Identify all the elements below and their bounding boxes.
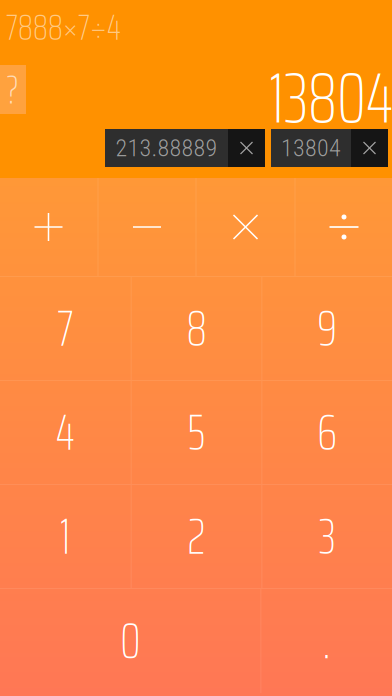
staticText: 0: [120, 602, 140, 680]
button[interactable]: Remove 13804: [351, 129, 388, 167]
staticText: 8: [186, 290, 206, 367]
staticText: 13804: [269, 42, 392, 154]
staticText: 9: [317, 290, 337, 367]
button[interactable]: Help: [0, 65, 26, 114]
button[interactable]: 213.88889: [105, 129, 228, 167]
staticText: 7888×7÷4: [6, 0, 121, 56]
button[interactable]: 3: [262, 485, 392, 588]
button[interactable]: 13804: [271, 129, 351, 167]
staticText: 3: [319, 498, 336, 575]
staticText: ?: [7, 58, 19, 121]
button[interactable]: Divide: [295, 178, 392, 276]
button[interactable]: 7: [0, 277, 131, 380]
button[interactable]: 1: [0, 485, 131, 588]
staticText: 2: [187, 498, 205, 575]
staticText: 5: [187, 394, 205, 471]
button[interactable]: 0: [0, 589, 260, 692]
button[interactable]: 2: [132, 485, 261, 588]
button[interactable]: Multiply: [196, 178, 294, 276]
button[interactable]: 5: [132, 381, 261, 484]
staticText: .: [323, 602, 331, 680]
staticText: 1: [60, 498, 71, 575]
button[interactable]: 4: [0, 381, 131, 484]
button[interactable]: 9: [262, 277, 392, 380]
button[interactable]: 8: [132, 277, 261, 380]
button[interactable]: Minus: [98, 178, 195, 276]
staticText: 4: [56, 394, 75, 471]
staticText: 6: [317, 394, 337, 471]
button[interactable]: Remove 213.88889: [228, 129, 265, 167]
button[interactable]: .: [261, 589, 392, 692]
staticText: 13804: [281, 134, 341, 162]
staticText: 213.88889: [115, 134, 217, 162]
button[interactable]: Plus: [0, 178, 97, 276]
button[interactable]: 6: [262, 381, 392, 484]
staticText: 7: [57, 290, 73, 367]
